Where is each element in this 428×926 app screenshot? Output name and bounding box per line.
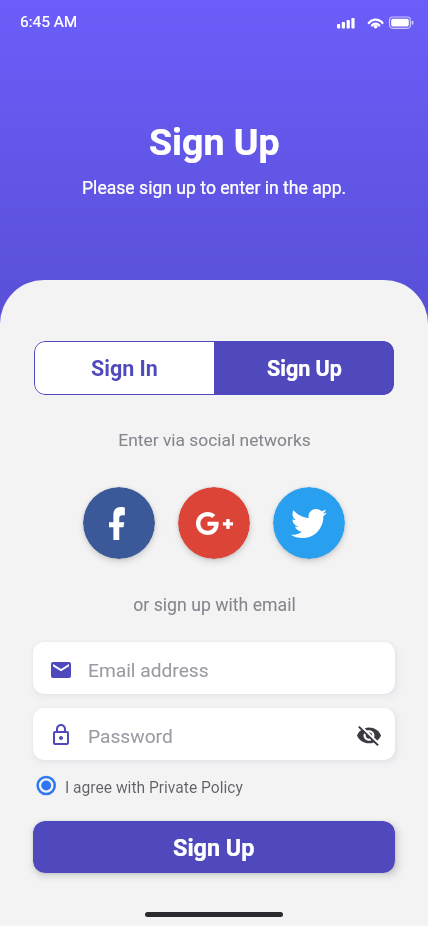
button[interactable]: Sign up with Google <box>178 487 250 559</box>
button[interactable]: Sign Up <box>33 821 395 873</box>
button[interactable]: Sign Up <box>214 341 394 395</box>
staticText: Sign Up <box>267 356 342 381</box>
button[interactable]: Sign In <box>34 341 214 395</box>
staticText: Sign Up <box>173 834 255 861</box>
button[interactable]: I agree with Private Policy <box>33 773 243 797</box>
staticText: 6:45 AM <box>20 13 78 31</box>
staticText: or sign up with email <box>133 595 296 616</box>
button[interactable]: Sign up with Twitter <box>273 487 345 559</box>
button[interactable]: Show password <box>347 710 395 758</box>
staticText: Email address <box>88 659 209 682</box>
button[interactable]: Email address <box>33 642 395 694</box>
staticText: Please sign up to enter in the app. <box>82 178 347 199</box>
staticText: I agree with Private Policy <box>65 779 243 797</box>
button[interactable]: Password <box>33 708 395 760</box>
button[interactable]: Sign up with Facebook <box>83 487 155 559</box>
staticText: Sign In <box>91 356 158 381</box>
staticText: Enter via social networks <box>118 430 311 450</box>
staticText: Password <box>88 725 173 748</box>
staticText: Sign Up <box>149 120 280 164</box>
